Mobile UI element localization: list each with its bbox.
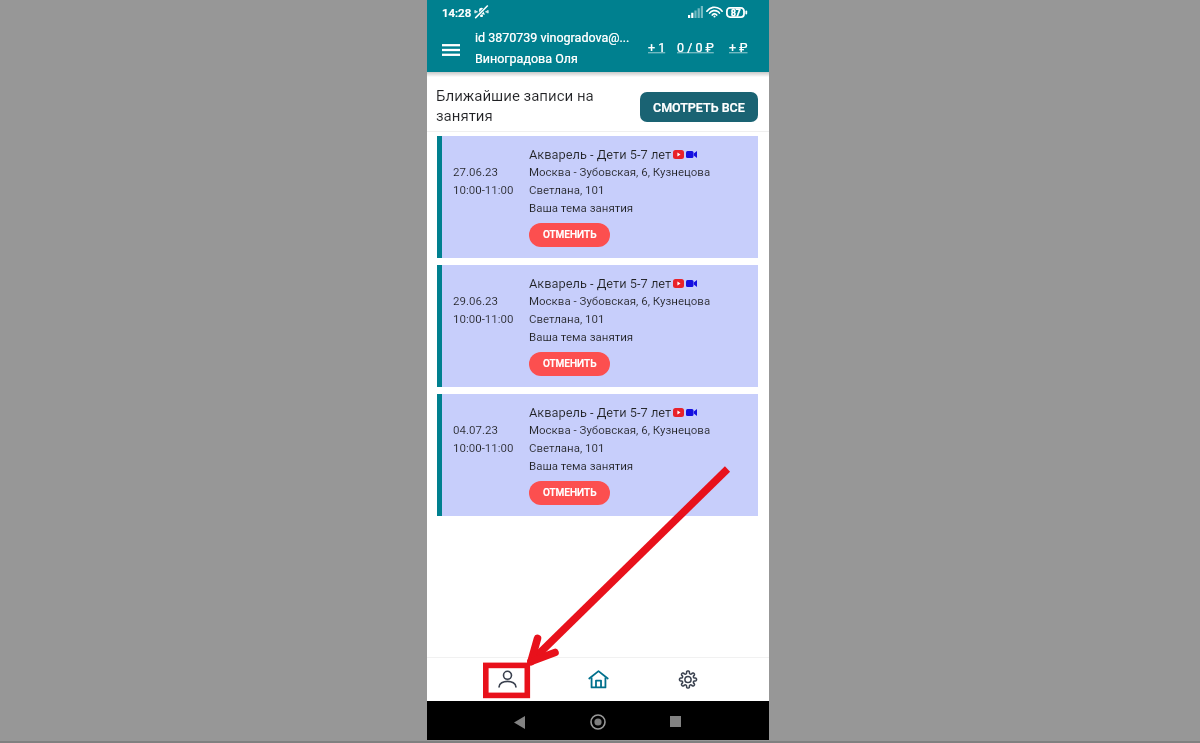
staticText: Светлана, 101 <box>529 312 605 325</box>
staticText: СМОТРЕТЬ ВСЕ <box>653 100 745 115</box>
button[interactable]: Акварель - Дети 5-7 лет <box>437 394 758 516</box>
button[interactable]: Акварель - Дети 5-7 лет <box>437 136 758 258</box>
staticText: Ваша тема занятия <box>529 459 634 472</box>
button[interactable]: Profile <box>485 657 530 701</box>
staticText: Москва - Зубовская, 6, Кузнецова <box>529 294 711 307</box>
button[interactable]: Home <box>576 657 621 701</box>
button[interactable]: Акварель - Дети 5-7 лет <box>437 265 758 387</box>
staticText: Акварель - Дети 5-7 лет <box>529 276 672 291</box>
staticText: ОТМЕНИТЬ <box>543 358 597 370</box>
button[interactable]: Settings <box>665 657 710 701</box>
staticText: Виноградова Оля <box>475 51 578 66</box>
staticText: ОТМЕНИТЬ <box>543 229 597 241</box>
button[interactable]: ОТМЕНИТЬ <box>529 223 610 247</box>
button[interactable]: Back <box>514 716 525 729</box>
button[interactable]: Open navigation menu <box>438 37 464 63</box>
staticText: 87 <box>731 8 741 18</box>
staticText: Москва - Зубовская, 6, Кузнецова <box>529 165 711 178</box>
button[interactable]: Home <box>590 714 606 730</box>
button[interactable]: ОТМЕНИТЬ <box>529 481 610 505</box>
staticText: 27.06.23 <box>453 165 498 178</box>
button[interactable]: + 1 <box>648 40 666 55</box>
button[interactable]: СМОТРЕТЬ ВСЕ <box>640 92 758 122</box>
staticText: + ₽ <box>729 40 748 55</box>
button[interactable]: 0 / 0 ₽ <box>677 40 714 55</box>
staticText: Москва - Зубовская, 6, Кузнецова <box>529 423 711 436</box>
staticText: id 3870739 vinogradova@... <box>475 30 630 45</box>
staticText: 29.06.23 <box>453 294 498 307</box>
staticText: Светлана, 101 <box>529 183 605 196</box>
staticText: Ближайшие записи на занятия <box>436 87 604 125</box>
staticText: Ваша тема занятия <box>529 330 634 343</box>
staticText: Светлана, 101 <box>529 441 605 454</box>
button[interactable]: + ₽ <box>729 40 748 55</box>
button[interactable]: ОТМЕНИТЬ <box>529 352 610 376</box>
staticText: 10:00-11:00 <box>453 312 514 325</box>
staticText: 10:00-11:00 <box>453 183 514 196</box>
staticText: 04.07.23 <box>453 423 498 436</box>
staticText: Акварель - Дети 5-7 лет <box>529 405 672 420</box>
staticText: + 1 <box>648 40 666 55</box>
staticText: 10:00-11:00 <box>453 441 514 454</box>
staticText: ОТМЕНИТЬ <box>543 487 597 499</box>
staticText: 0 / 0 ₽ <box>677 40 714 55</box>
staticText: Ваша тема занятия <box>529 201 634 214</box>
staticText: 14:28 <box>442 6 472 19</box>
staticText: Акварель - Дети 5-7 лет <box>529 147 672 162</box>
